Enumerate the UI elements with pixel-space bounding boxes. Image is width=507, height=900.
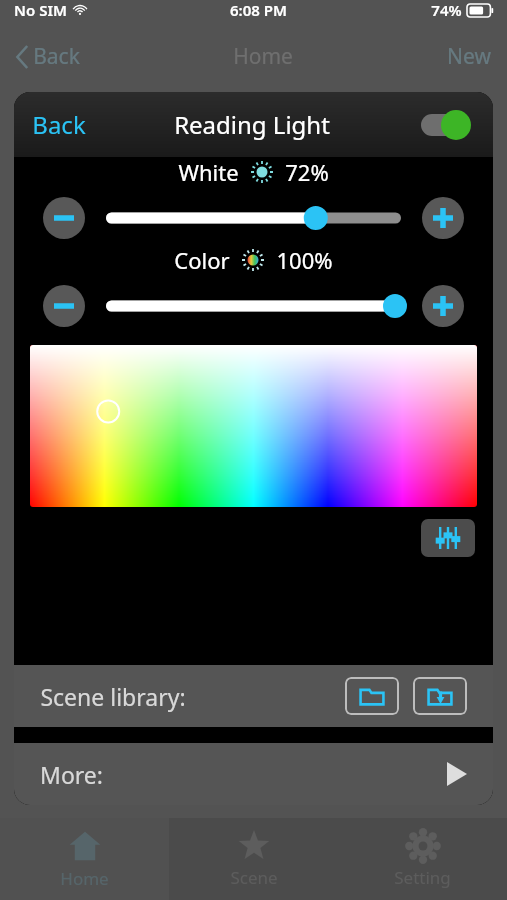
staticText: Back <box>33 42 80 71</box>
button[interactable]: More: <box>14 743 493 805</box>
button[interactable]: Save scene <box>413 677 467 715</box>
staticText: 74% <box>431 0 462 20</box>
button[interactable]: Home <box>0 818 169 900</box>
button[interactable]: Power toggle <box>419 110 475 140</box>
button[interactable] <box>101 293 406 319</box>
button[interactable]: Setting <box>338 818 507 900</box>
staticText: Back <box>32 108 86 141</box>
button[interactable]: Decrease <box>43 285 85 327</box>
button[interactable]: Increase <box>422 285 464 327</box>
button[interactable]: Open scene <box>345 677 399 715</box>
staticText: Scene <box>230 866 278 889</box>
staticText: Home <box>60 867 109 890</box>
button[interactable]: Scene <box>169 818 338 900</box>
button[interactable] <box>101 205 406 231</box>
button[interactable]: Decrease <box>43 197 85 239</box>
staticText: Reading Light <box>174 108 330 141</box>
staticText: New <box>447 42 491 71</box>
button[interactable]: Adjust settings <box>421 519 475 557</box>
staticText: 6:08 PM <box>230 0 287 20</box>
staticText: 72% <box>285 157 329 187</box>
staticText: No SIM <box>14 0 67 20</box>
staticText: Scene library: <box>40 681 186 712</box>
staticText: Color <box>174 245 230 275</box>
staticText: 100% <box>276 245 333 275</box>
staticText: Setting <box>394 866 451 889</box>
staticText: Home <box>233 42 293 71</box>
staticText: More: <box>40 759 103 790</box>
staticText: White <box>178 157 239 187</box>
button[interactable]: Increase <box>422 197 464 239</box>
button[interactable]: Back <box>32 108 86 141</box>
